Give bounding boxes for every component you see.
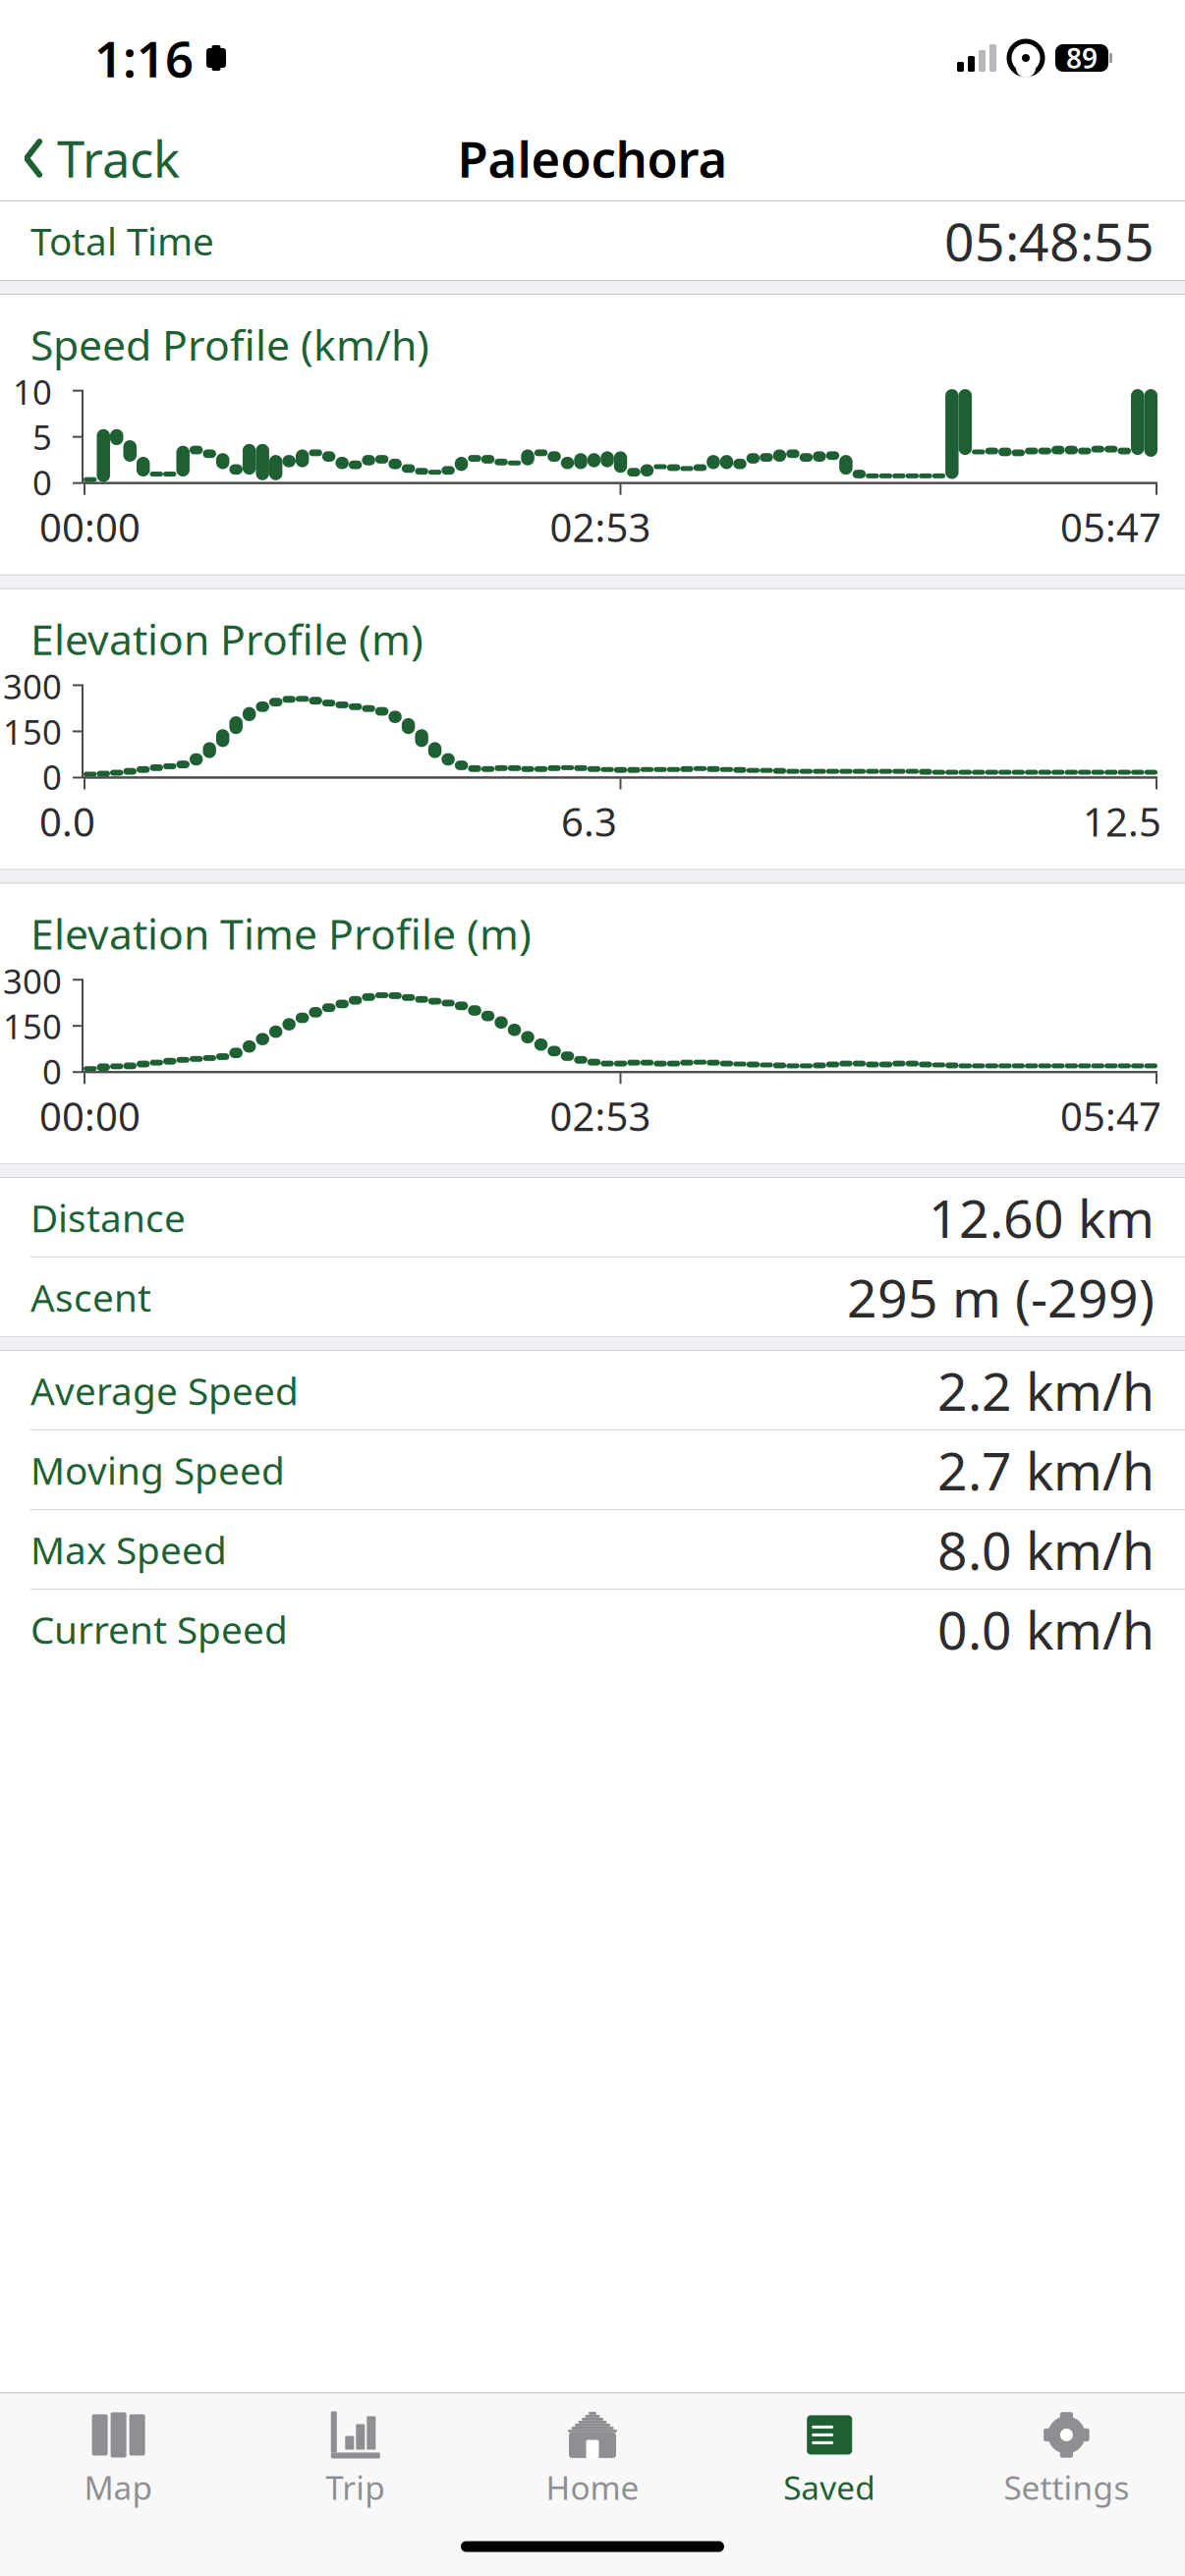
staticText: Elevation Time Profile (m)	[30, 905, 532, 961]
staticText: 0.0	[39, 795, 95, 847]
button[interactable]: Home	[474, 2402, 711, 2509]
staticText: 150	[3, 1003, 62, 1048]
button[interactable]: Max Speed	[0, 1510, 1185, 1589]
button[interactable]: Trip	[237, 2402, 474, 2509]
staticText: 05:47	[1060, 501, 1161, 553]
staticText: 0	[42, 1048, 62, 1094]
staticText: 00:00	[39, 1090, 141, 1142]
staticText: Track	[57, 125, 180, 191]
button[interactable]: Current Speed	[0, 1590, 1185, 1669]
staticText: 0.0 km/h	[937, 1594, 1155, 1664]
staticText: 10	[13, 369, 52, 414]
staticText: 02:53	[550, 501, 651, 553]
staticText: Saved	[783, 2465, 876, 2509]
button[interactable]: Track	[0, 113, 180, 203]
staticText: 89	[1066, 40, 1098, 76]
staticText: 2.7 km/h	[937, 1435, 1155, 1505]
staticText: 300	[3, 958, 62, 1003]
staticText: 02:53	[550, 1090, 651, 1142]
staticText: Total Time	[30, 215, 214, 266]
staticText: Map	[84, 2465, 153, 2509]
staticText: 05:48:55	[944, 206, 1155, 275]
button[interactable]: Total Time	[0, 201, 1185, 280]
staticText: 12.60 km	[929, 1183, 1155, 1252]
staticText: 150	[3, 709, 62, 754]
staticText: Home	[546, 2465, 639, 2509]
staticText: 1:16	[94, 25, 194, 91]
staticText: Max Speed	[30, 1524, 227, 1575]
staticText: 300	[3, 664, 62, 709]
staticText: Speed Profile (km/h)	[30, 316, 429, 372]
staticText: 6.3	[561, 795, 617, 847]
staticText: 05:47	[1060, 1090, 1161, 1142]
staticText: 0	[42, 754, 62, 799]
staticText: Ascent	[30, 1272, 151, 1322]
staticText: Trip	[326, 2465, 385, 2509]
staticText: Paleochora	[457, 125, 728, 191]
button[interactable]: Ascent	[0, 1258, 1185, 1336]
staticText: 295 m (-299)	[847, 1262, 1155, 1332]
staticText: Settings	[1004, 2465, 1129, 2509]
staticText: Average Speed	[30, 1365, 299, 1416]
staticText: 8.0 km/h	[937, 1515, 1155, 1584]
staticText: 0	[32, 459, 52, 505]
staticText: 5	[32, 414, 52, 459]
staticText: Moving Speed	[30, 1445, 285, 1495]
button[interactable]: Distance	[0, 1178, 1185, 1257]
staticText: Elevation Profile (m)	[30, 611, 423, 667]
staticText: Distance	[30, 1192, 186, 1243]
button[interactable]: Saved	[711, 2402, 948, 2509]
button[interactable]: Map	[0, 2402, 237, 2509]
button[interactable]: Moving Speed	[0, 1431, 1185, 1509]
staticText: Current Speed	[30, 1604, 288, 1654]
staticText: 2.2 km/h	[937, 1356, 1155, 1425]
staticText: 00:00	[39, 501, 141, 553]
button[interactable]: Settings	[948, 2402, 1185, 2509]
button[interactable]: Average Speed	[0, 1351, 1185, 1430]
staticText: 12.5	[1083, 795, 1161, 847]
